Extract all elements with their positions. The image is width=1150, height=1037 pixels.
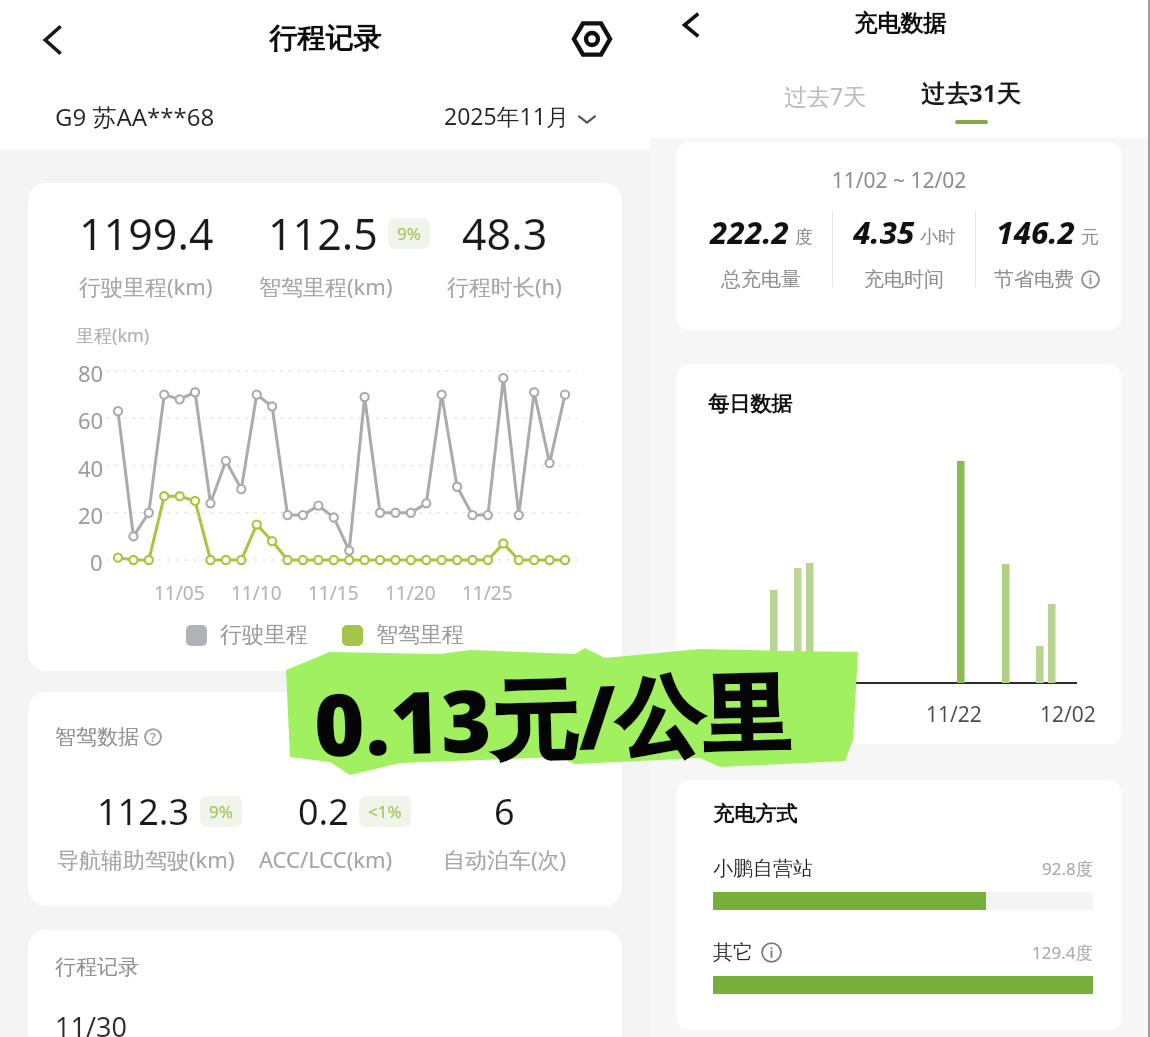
staticText: 9%: [397, 222, 421, 245]
staticText: 11/10: [231, 580, 282, 606]
staticText: 112.5: [268, 204, 378, 263]
staticText: 小时: [920, 226, 956, 249]
staticText: 129.4度: [1032, 941, 1093, 964]
staticText: 智驾里程(km): [259, 271, 393, 301]
staticText: 每日数据: [708, 391, 792, 417]
staticText: 6: [494, 787, 515, 836]
staticText: 行程记录: [0, 21, 650, 56]
staticText: 11/02 ~ 12/02: [676, 166, 1122, 195]
staticText: 小鹏自营站: [713, 856, 813, 881]
button[interactable]: Help: [144, 728, 162, 746]
button[interactable]: Back: [25, 12, 81, 68]
button[interactable]: Back: [666, 0, 716, 50]
staticText: 112.3: [97, 787, 190, 836]
button[interactable]: 行程记录: [28, 930, 622, 1037]
button[interactable]: More information: [761, 942, 782, 963]
staticText: 20: [78, 500, 104, 530]
staticText: 11/30: [55, 1008, 127, 1037]
staticText: 智驾数据: [55, 724, 139, 750]
staticText: 过去7天: [784, 80, 867, 111]
staticText: 充电方式: [713, 801, 797, 827]
staticText: 11/20: [385, 580, 436, 606]
staticText: 行驶里程: [220, 621, 308, 649]
staticText: 11/15: [308, 580, 359, 606]
button[interactable]: 过去31天: [915, 72, 1027, 128]
staticText: 总充电量: [721, 267, 801, 292]
staticText: 0.13元/公里: [312, 651, 792, 782]
staticText: 行程记录: [55, 954, 139, 980]
button[interactable]: 过去7天: [780, 76, 871, 115]
staticText: 智驾里程: [376, 621, 464, 649]
staticText: 80: [78, 358, 104, 388]
staticText: 过去31天: [921, 76, 1021, 109]
staticText: 0.2: [298, 787, 349, 836]
staticText: G9 苏AA***68: [55, 100, 215, 133]
button[interactable]: More information: [1081, 270, 1100, 289]
staticText: 146.2: [996, 211, 1076, 253]
button[interactable]: Settings: [564, 11, 620, 67]
staticText: 节省电费: [994, 267, 1074, 292]
staticText: ACC/LCC(km): [259, 844, 393, 874]
staticText: 48.3: [462, 204, 548, 263]
staticText: 行程时长(h): [447, 271, 562, 301]
staticText: 40: [78, 453, 104, 483]
staticText: 其它: [713, 940, 753, 965]
staticText: 1199.4: [79, 204, 214, 263]
staticText: 11/05: [154, 580, 205, 606]
staticText: 11/22: [926, 700, 982, 729]
staticText: 元: [1081, 226, 1099, 249]
staticText: ?: [150, 728, 156, 746]
staticText: <1%: [368, 800, 402, 823]
button[interactable]: 2025年11月: [444, 100, 596, 131]
staticText: 导航辅助驾驶(km): [57, 844, 235, 874]
staticText: 充电时间: [864, 267, 944, 292]
staticText: 92.8度: [1042, 857, 1093, 880]
staticText: 充电数据: [650, 9, 1150, 38]
staticText: 里程(km): [76, 323, 150, 348]
staticText: 60: [78, 405, 104, 435]
staticText: 12/02: [1040, 700, 1096, 729]
staticText: 11/25: [462, 580, 513, 606]
staticText: 行驶里程(km): [79, 271, 213, 301]
staticText: 222.2: [710, 211, 790, 253]
staticText: 9%: [209, 800, 233, 823]
staticText: 度: [795, 226, 813, 249]
staticText: 自动泊车(次): [443, 844, 567, 874]
staticText: 4.35: [853, 211, 915, 253]
staticText: 2025年11月: [444, 100, 569, 131]
staticText: 0: [90, 547, 103, 577]
